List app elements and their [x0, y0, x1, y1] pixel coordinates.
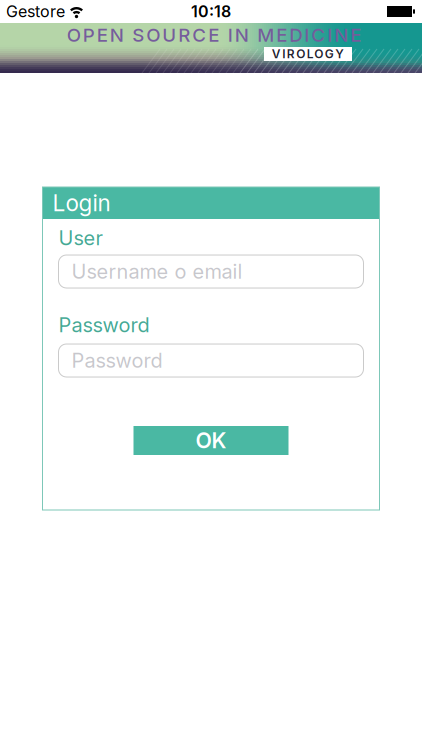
- staticText: C: [192, 24, 206, 46]
- staticText: E: [97, 24, 108, 46]
- staticText: O: [67, 24, 81, 46]
- staticText: C: [311, 24, 325, 46]
- staticText: U: [162, 24, 176, 46]
- button[interactable]: Password: [58, 344, 363, 377]
- staticText: E: [208, 24, 219, 46]
- staticText: P: [83, 24, 95, 46]
- staticText: Password: [58, 313, 149, 337]
- staticText: E: [276, 24, 287, 46]
- staticText: Username o email: [71, 260, 242, 283]
- staticText: R: [178, 24, 190, 46]
- staticText: OK: [195, 428, 226, 453]
- staticText: Login: [52, 190, 110, 216]
- staticText: Password: [71, 349, 162, 372]
- button[interactable]: Username o email: [58, 255, 363, 288]
- staticText: S: [132, 24, 144, 46]
- staticText: N: [110, 24, 124, 46]
- staticText: M: [257, 24, 274, 46]
- staticText: I: [327, 24, 332, 46]
- button[interactable]: OK: [133, 426, 288, 455]
- staticText: 10:18: [191, 2, 231, 21]
- staticText: Gestore: [6, 2, 65, 21]
- staticText: E: [350, 24, 361, 46]
- staticText: D: [289, 24, 302, 46]
- staticText: I: [304, 24, 309, 46]
- staticText: VIROLOGY: [272, 47, 344, 61]
- staticText: N: [334, 24, 348, 46]
- staticText: O: [146, 24, 160, 46]
- staticText: User: [58, 226, 102, 250]
- staticText: N: [235, 24, 249, 46]
- staticText: I: [228, 24, 233, 46]
